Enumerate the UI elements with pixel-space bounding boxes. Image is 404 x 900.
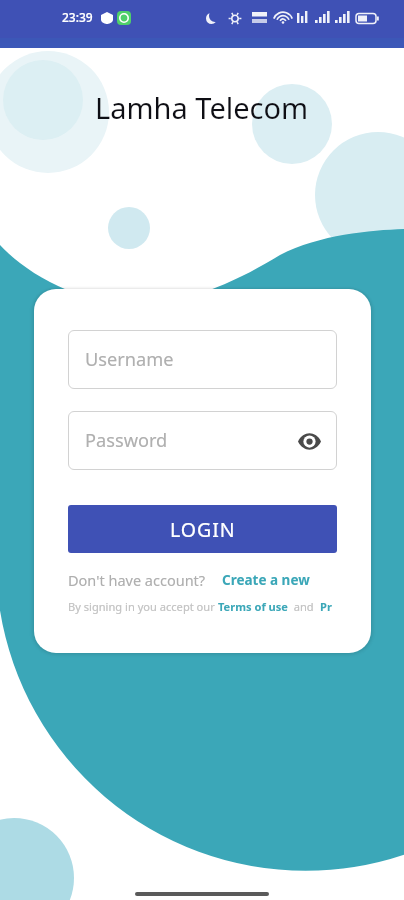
button[interactable]: Pr: [320, 599, 332, 614]
button[interactable]: Password: [68, 411, 337, 470]
staticText: Username: [85, 347, 174, 372]
staticText: Password: [85, 428, 168, 453]
staticText: Lamha Telecom: [95, 88, 309, 127]
staticText: By signing in you accept our: [68, 599, 218, 614]
button[interactable]: Show password: [295, 427, 323, 455]
button[interactable]: Create a new: [222, 571, 310, 589]
staticText: LOGIN: [170, 516, 236, 543]
button[interactable]: LOGIN: [68, 505, 337, 553]
button[interactable]: Username: [68, 330, 337, 389]
staticText: Don't have account?: [68, 570, 206, 590]
staticText: Create a new: [222, 571, 310, 589]
staticText: Pr: [320, 599, 332, 614]
staticText: 23:39: [62, 9, 93, 25]
staticText: Terms of use: [218, 599, 288, 614]
staticText: and: [288, 599, 320, 614]
button[interactable]: Terms of use: [218, 599, 288, 614]
